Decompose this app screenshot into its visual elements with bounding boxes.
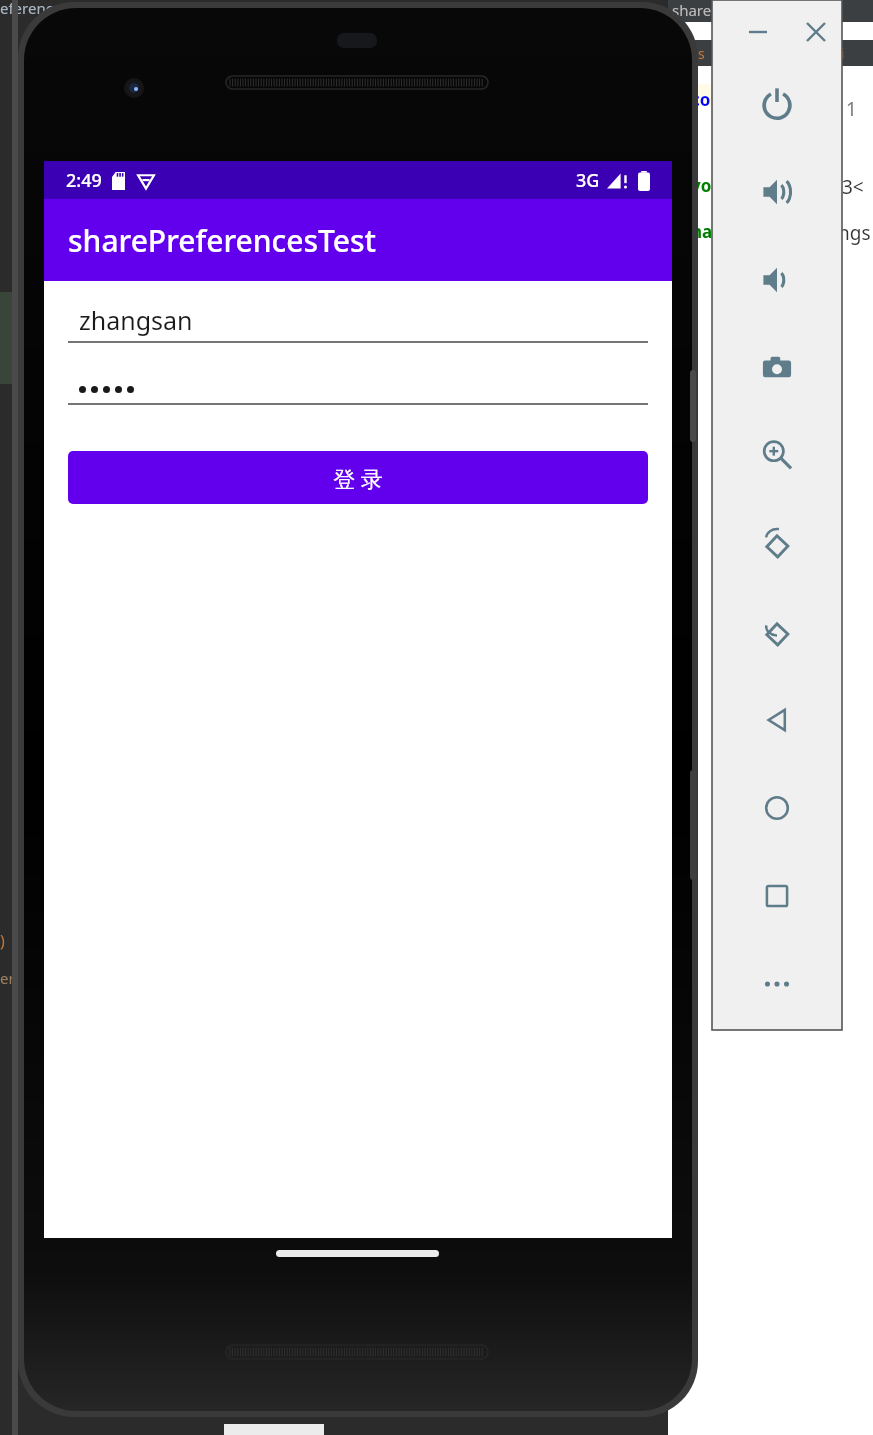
button[interactable]: More [747,954,807,1014]
button[interactable]: Volume down [747,250,807,310]
button[interactable]: Rotate right [747,602,807,662]
staticText: ) [0,930,5,952]
staticText: sharep [672,0,721,20]
button[interactable]: Volume up [747,162,807,222]
staticText: 3G [576,168,600,193]
button[interactable]: Minimize [738,12,778,52]
button[interactable] [68,367,648,405]
staticText: es [690,44,705,63]
staticText: eferenc [0,0,53,18]
staticText: co [691,88,711,111]
staticText: zhangsan [79,303,193,337]
staticText: 2:49 [66,168,102,193]
staticText: 登 录 [333,463,383,493]
button[interactable]: zhangsan [68,303,648,343]
button[interactable]: Back [747,690,807,750]
staticText: na [691,220,713,243]
button[interactable]: Zoom [747,425,807,485]
button[interactable]: Close [796,12,836,52]
staticText: vo [691,174,712,197]
staticText: sharePreferencesTest [68,220,377,261]
button[interactable]: 登 录 [68,451,648,504]
staticText: ere [0,968,23,988]
staticText: 3< [842,174,864,200]
button[interactable]: Rotate left [747,514,807,574]
staticText: Acti [820,44,845,63]
staticText: ngs [838,220,871,246]
button[interactable]: Home [747,778,807,838]
button[interactable]: Screenshot [747,337,807,397]
button[interactable]: Power [747,74,807,134]
button[interactable]: Overview [747,866,807,926]
staticText: 1 [846,96,857,122]
